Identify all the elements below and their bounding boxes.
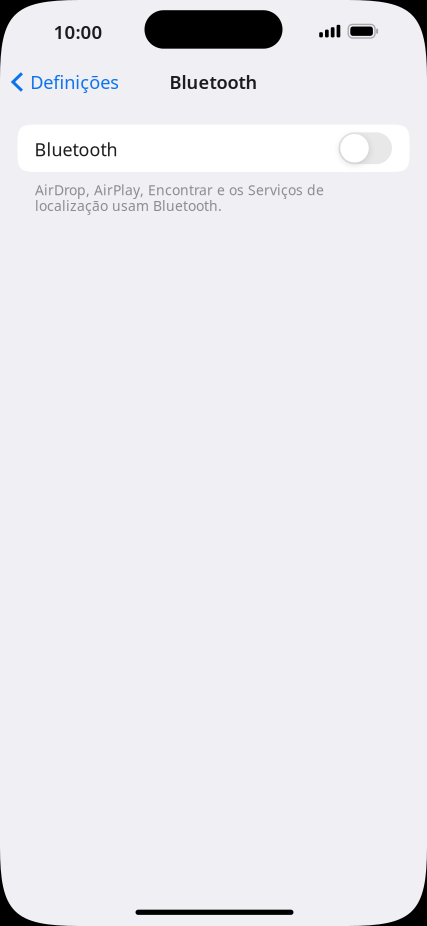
staticText: AirDrop, AirPlay, Encontrar e os Serviço… [35, 180, 324, 199]
staticText: Definições [30, 70, 119, 94]
staticText: localização usam Bluetooth. [35, 196, 222, 215]
button[interactable]: Bluetooth [17, 124, 409, 172]
staticText: 10:00 [53, 19, 102, 44]
staticText: Bluetooth [34, 137, 117, 161]
staticText: Bluetooth [169, 70, 257, 94]
button[interactable]: Definições [0, 60, 144, 104]
